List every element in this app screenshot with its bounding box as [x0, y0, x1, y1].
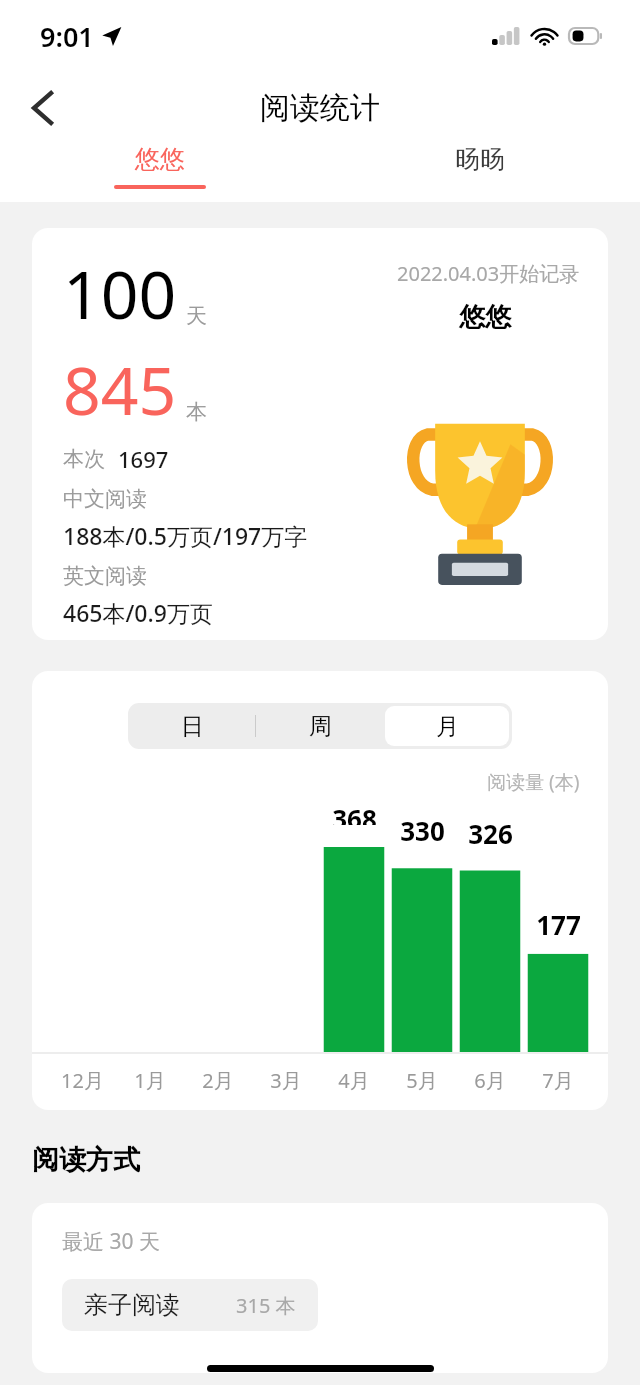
staticText: 1月 — [134, 1067, 166, 1094]
staticText: 最近 30 天 — [62, 1227, 160, 1256]
staticText: 月 — [436, 712, 459, 741]
staticText: 悠悠 — [459, 301, 511, 334]
staticText: 9:01 — [40, 18, 94, 55]
staticText: 2022.04.03开始记录 — [397, 260, 580, 287]
staticText: 12月 — [61, 1067, 104, 1094]
button[interactable]: 旸旸 — [320, 144, 640, 202]
staticText: 188本/0.5万页/197万字 — [63, 520, 308, 551]
staticText: 英文阅读 — [63, 563, 147, 589]
staticText: 4月 — [338, 1067, 370, 1094]
staticText: 天 — [186, 303, 207, 329]
staticText: 326 — [468, 816, 513, 851]
button[interactable]: 亲子阅读 — [62, 1279, 318, 1331]
staticText: 1697 — [118, 444, 169, 474]
staticText: 周 — [309, 712, 332, 741]
staticText: 本 — [186, 399, 207, 425]
staticText: 7月 — [542, 1067, 574, 1094]
staticText: 亲子阅读 — [84, 1290, 180, 1320]
staticText: 中文阅读 — [63, 486, 147, 512]
staticText: 本次 — [63, 446, 105, 472]
button[interactable]: 月 — [385, 706, 509, 746]
staticText: 330 — [400, 813, 445, 848]
staticText: 368 — [332, 801, 377, 825]
button[interactable]: 100 — [32, 228, 608, 640]
staticText: 阅读量 (本) — [487, 769, 580, 795]
staticText: 悠悠 — [135, 144, 185, 175]
staticText: 465本/0.9万页 — [63, 597, 213, 628]
button[interactable]: 周 — [256, 703, 384, 749]
staticText: 5月 — [406, 1067, 438, 1094]
staticText: 3月 — [270, 1067, 302, 1094]
staticText: 315 本 — [236, 1292, 296, 1319]
staticText: 2月 — [202, 1067, 234, 1094]
staticText: 177 — [536, 907, 581, 942]
staticText: 阅读统计 — [260, 89, 380, 127]
button[interactable]: Back — [14, 80, 70, 136]
staticText: 6月 — [474, 1067, 506, 1094]
staticText: 100 — [63, 248, 177, 338]
staticText: 旸旸 — [455, 144, 505, 175]
button[interactable]: 悠悠 — [0, 144, 320, 202]
button[interactable]: 日 — [128, 703, 256, 749]
staticText: 阅读方式 — [32, 1143, 140, 1177]
staticText: 日 — [181, 712, 204, 741]
staticText: 845 — [63, 344, 177, 434]
